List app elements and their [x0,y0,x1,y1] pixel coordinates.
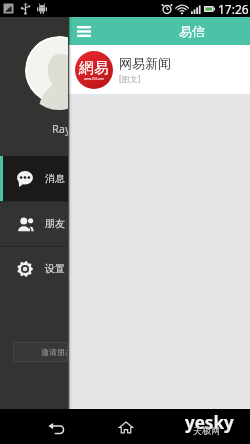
staticText: 天极网 [193,425,220,436]
staticText: 消息 [45,172,65,185]
staticText: 17:26 [218,1,249,17]
button[interactable]: 消息 [0,156,68,201]
staticText: 網易 [79,59,109,78]
button[interactable]: 设置 [0,246,68,291]
staticText: [图文] [119,73,141,84]
staticText: 邀请朋友使用易信 [41,347,68,357]
staticText: yesky [185,411,234,434]
staticText: 朋友 [45,217,65,230]
button[interactable]: 網易 [68,45,250,94]
staticText: 网易新闻 [119,55,171,71]
button[interactable]: Recent apps [179,410,213,444]
staticText: 易信 [179,23,205,39]
button[interactable]: 邀请朋友使用易信 [13,342,68,362]
button[interactable]: Back [39,411,73,444]
staticText: www.163.com [84,77,104,81]
button[interactable]: Menu [73,20,95,42]
button[interactable]: Home [109,410,143,444]
staticText: 设置 [45,262,65,275]
staticText: Ray [52,121,68,136]
button[interactable]: 朋友 [0,201,68,246]
